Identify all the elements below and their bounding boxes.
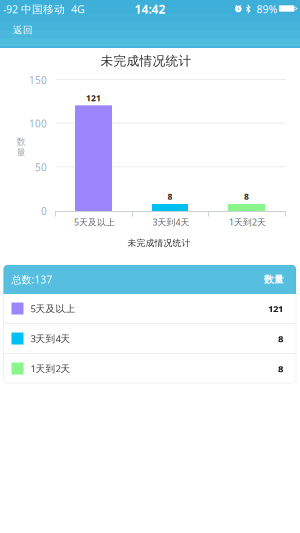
staticText: 3天到4天 (152, 216, 189, 228)
staticText: 8 (278, 332, 283, 345)
staticText: 89% (256, 2, 277, 16)
staticText: 121 (268, 302, 283, 315)
staticText: 5天及以上 (30, 302, 75, 315)
staticText: 1天到2天 (229, 216, 266, 228)
button[interactable]: 3天到4天 (3, 324, 296, 354)
staticText: 8 (244, 191, 249, 202)
staticText: 数量 (264, 273, 284, 286)
staticText: 1天到2天 (30, 362, 70, 375)
staticText: 3天到4天 (30, 332, 70, 345)
staticText: 50 (35, 160, 47, 174)
staticText: 8 (167, 191, 172, 202)
staticText: 未完成情况统计 (100, 53, 191, 69)
staticText: -92 中国移动 4G (3, 2, 85, 16)
staticText: 返回 (13, 24, 33, 36)
staticText: 量 (16, 146, 25, 158)
staticText: 5天及以上 (74, 216, 115, 228)
button[interactable]: 1天到2天 (3, 354, 296, 383)
staticText: 8 (278, 362, 283, 375)
button[interactable]: 返回 (0, 18, 43, 42)
staticText: 总数:137 (11, 273, 52, 286)
staticText: 150 (29, 73, 47, 87)
staticText: 14:42 (134, 1, 165, 17)
staticText: 121 (86, 92, 101, 104)
staticText: 100 (29, 117, 47, 130)
staticText: 未完成情况统计 (127, 237, 190, 249)
staticText: 0 (41, 204, 47, 218)
button[interactable]: 5天及以上 (3, 294, 296, 324)
staticText: 数 (16, 136, 25, 147)
